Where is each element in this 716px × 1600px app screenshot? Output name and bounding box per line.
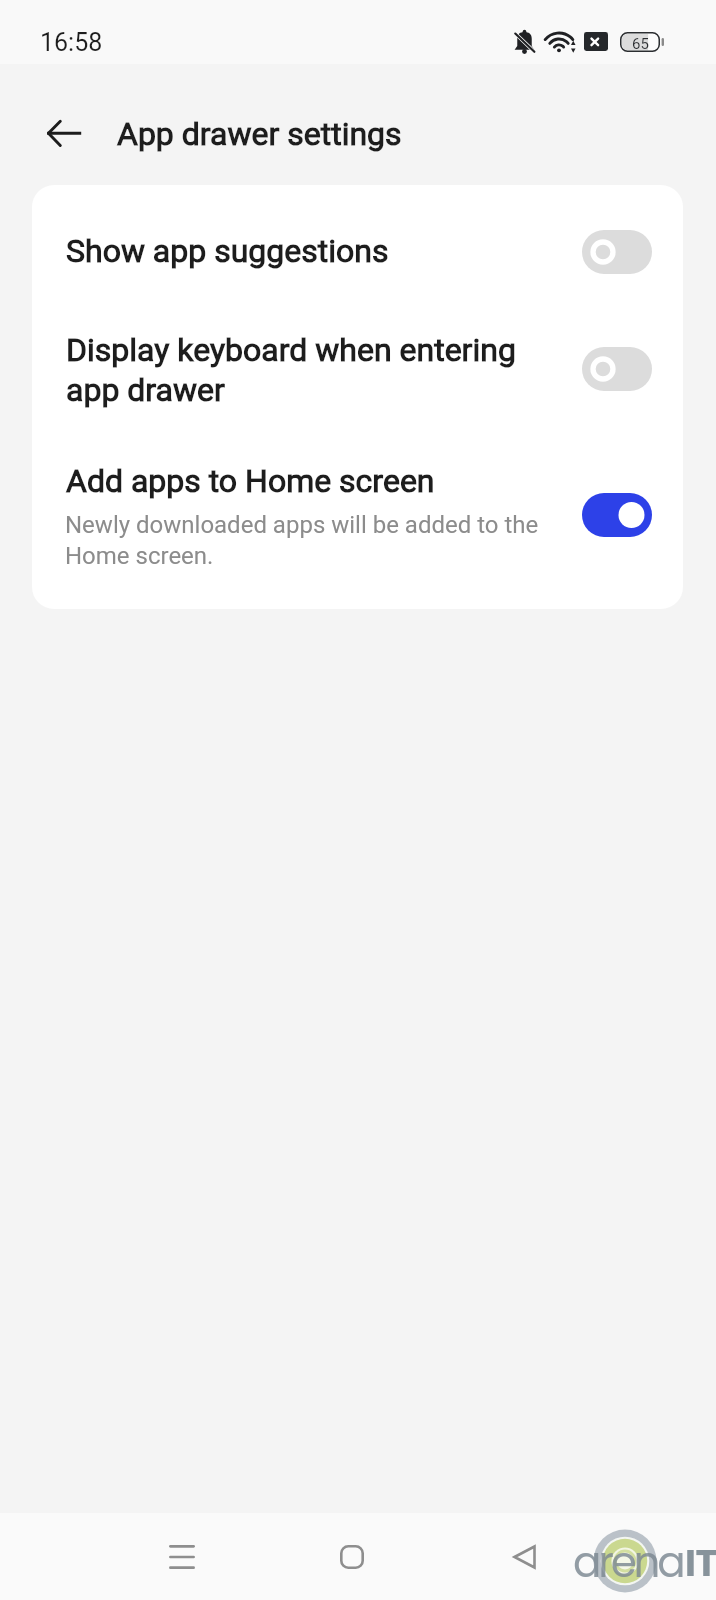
- button[interactable]: Home: [304, 1513, 400, 1600]
- button[interactable]: Switch off: [582, 347, 652, 391]
- staticText: 65: [632, 35, 649, 53]
- staticText: app drawer: [66, 371, 225, 409]
- button[interactable]: Switch on: [582, 493, 652, 537]
- staticText: IT: [685, 1537, 716, 1589]
- button[interactable]: [32, 185, 682, 281]
- staticText: Show app suggestions: [66, 232, 389, 270]
- staticText: 16:58: [40, 28, 103, 57]
- staticText: Newly downloaded apps will be added to t…: [65, 511, 539, 539]
- staticText: arena: [573, 1533, 683, 1592]
- button[interactable]: Back: [33, 103, 95, 165]
- button[interactable]: [32, 425, 682, 575]
- staticText: App drawer settings: [117, 115, 402, 153]
- staticText: Add apps to Home screen: [66, 462, 435, 500]
- button[interactable]: Back: [476, 1513, 572, 1600]
- staticText: Home screen.: [65, 542, 214, 570]
- button[interactable]: Recent apps: [134, 1513, 230, 1600]
- button[interactable]: [32, 285, 682, 415]
- button[interactable]: Switch off: [582, 230, 652, 274]
- staticText: Display keyboard when entering: [66, 331, 516, 369]
